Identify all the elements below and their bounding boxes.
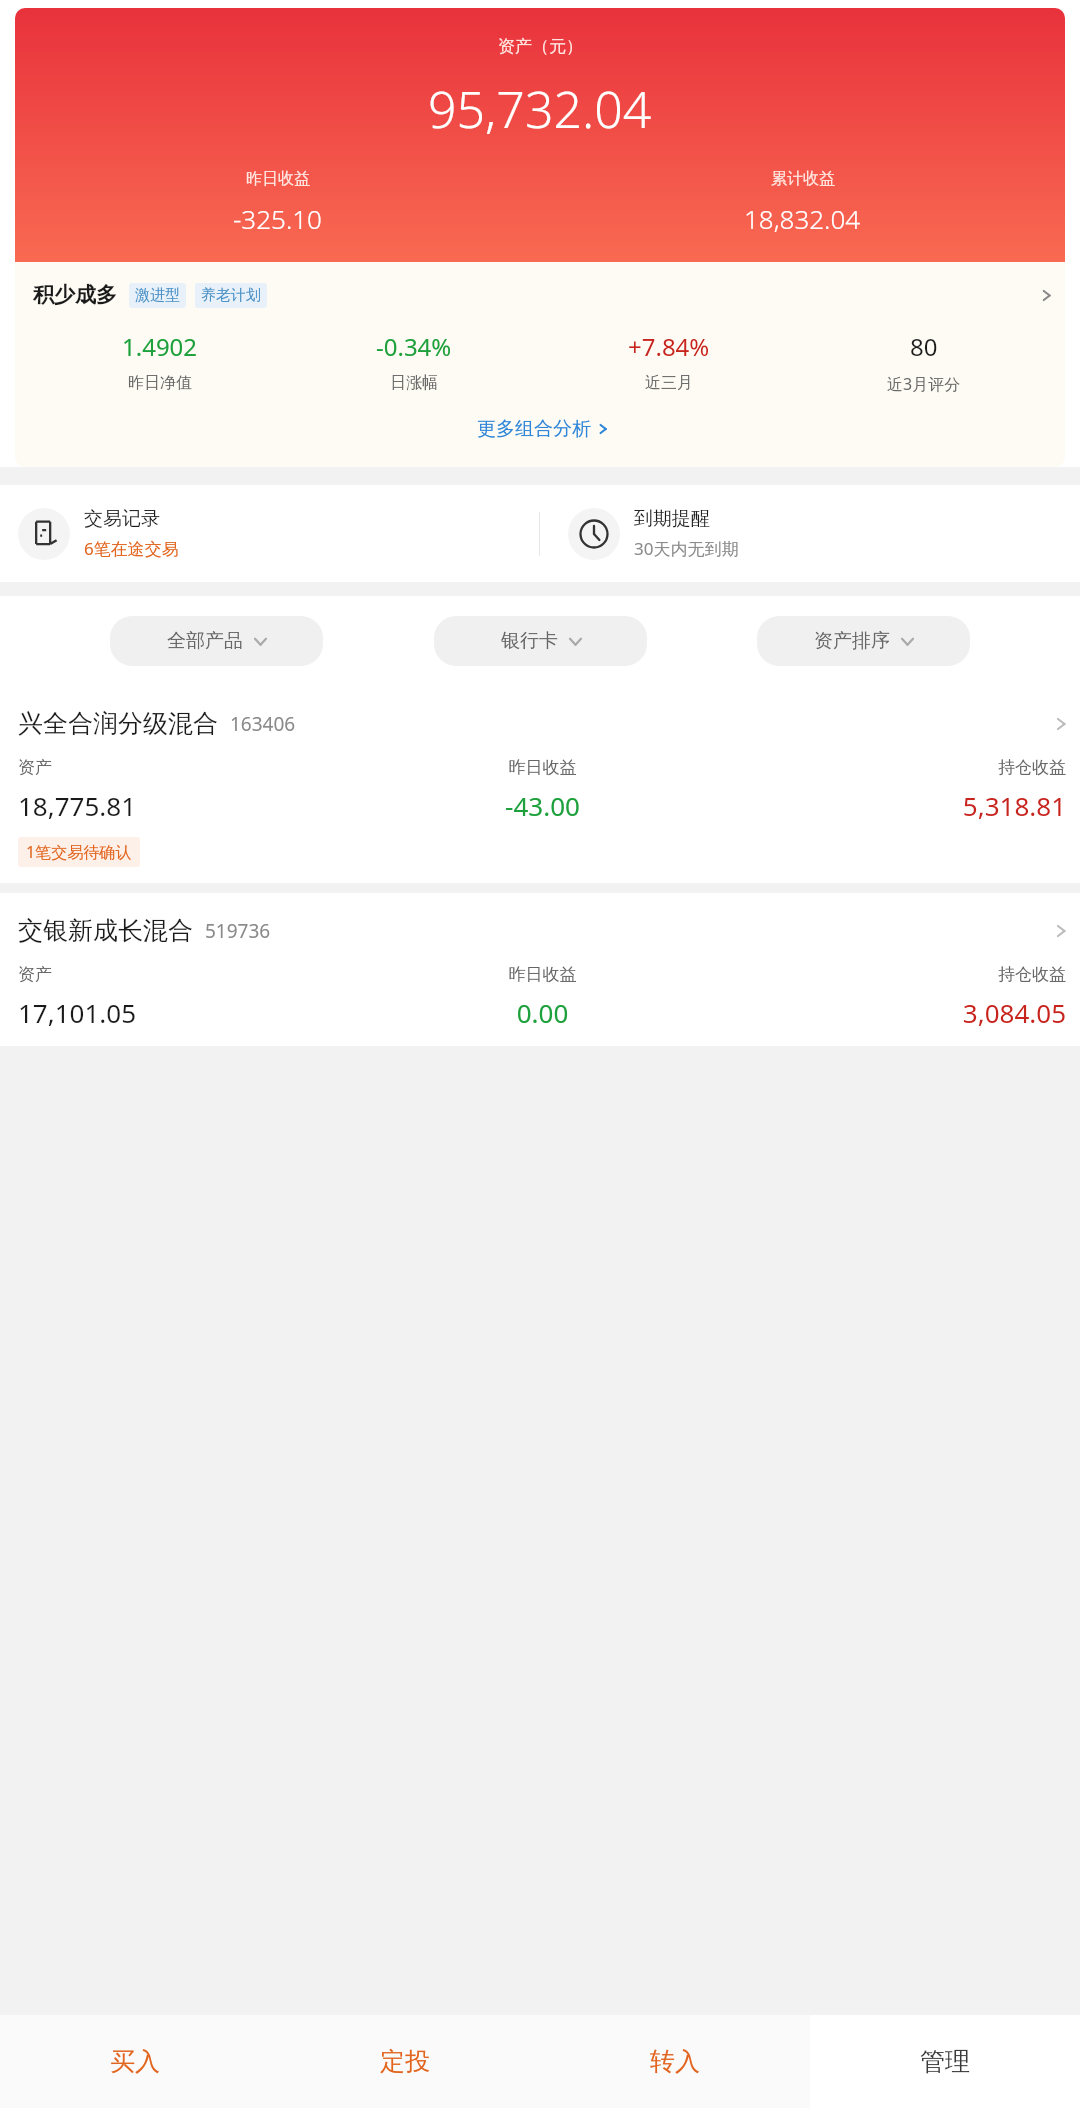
staticText: 163406 (230, 711, 296, 737)
staticText: 0.00 (368, 995, 717, 1030)
staticText: 昨日收益 (246, 169, 310, 189)
staticText: 资产 (18, 964, 368, 985)
staticText: 1.4902 (122, 330, 198, 363)
staticText: 资产 (18, 757, 368, 778)
staticText: 交银新成长混合 (18, 915, 193, 946)
staticText: 近三月 (645, 373, 693, 393)
staticText: 买入 (110, 2046, 160, 2077)
staticText: 18,832.04 (744, 201, 861, 236)
button[interactable]: 交银新成长混合 (0, 893, 1080, 1046)
staticText: 6笔在途交易 (84, 537, 179, 560)
staticText: 积少成多 (33, 282, 117, 308)
staticText: 银行卡 (501, 629, 558, 653)
button[interactable]: 资产排序 (757, 616, 970, 666)
staticText: 18,775.81 (18, 788, 368, 823)
staticText: 激进型 (135, 286, 180, 305)
staticText: 兴全合润分级混合 (18, 708, 218, 739)
button[interactable]: 转入 (540, 2015, 810, 2108)
button[interactable]: 更多组合分析 (33, 417, 1051, 441)
button[interactable]: 定投 (270, 2015, 540, 2108)
staticText: 定投 (380, 2046, 430, 2077)
staticText: 持仓收益 (717, 964, 1066, 985)
staticText: -43.00 (368, 788, 717, 823)
staticText: 资产（元） (498, 36, 583, 57)
staticText: 日涨幅 (390, 373, 438, 393)
button[interactable]: 资产（元） (15, 8, 1065, 262)
other: 到期提醒 (579, 519, 609, 549)
staticText: 519736 (205, 918, 271, 944)
staticText: 管理 (920, 2046, 970, 2077)
staticText: 交易记录 (84, 507, 160, 531)
staticText: 到期提醒 (634, 507, 710, 531)
staticText: 全部产品 (167, 629, 243, 653)
staticText: 5,318.81 (717, 788, 1066, 823)
button[interactable]: 兴全合润分级混合 (0, 686, 1080, 883)
staticText: 转入 (650, 2046, 700, 2077)
staticText: 80 (910, 330, 938, 363)
button[interactable]: 银行卡 (434, 616, 647, 666)
staticText: -325.10 (233, 201, 322, 236)
button[interactable]: 全部产品 (110, 616, 323, 666)
staticText: 95,732.04 (428, 75, 652, 143)
staticText: 累计收益 (771, 169, 835, 189)
staticText: 养老计划 (201, 286, 261, 305)
button[interactable]: 交易记录 (0, 485, 539, 582)
staticText: 1笔交易待确认 (26, 841, 132, 863)
staticText: 昨日净值 (128, 373, 192, 393)
staticText: 30天内无到期 (634, 537, 739, 560)
staticText: -0.34% (376, 330, 452, 363)
button[interactable]: 买入 (0, 2015, 270, 2108)
staticText: 资产排序 (814, 629, 890, 653)
staticText: 昨日收益 (368, 964, 717, 985)
staticText: 3,084.05 (717, 995, 1066, 1030)
staticText: 17,101.05 (18, 995, 368, 1030)
staticText: 昨日收益 (368, 757, 717, 778)
button[interactable]: 到期提醒 (540, 485, 1080, 582)
button[interactable]: 管理 (810, 2015, 1080, 2108)
staticText: 近3月评分 (887, 373, 961, 395)
other: 交易记录 (30, 520, 58, 548)
staticText: 更多组合分析 (477, 417, 591, 441)
button[interactable]: 积少成多 (15, 262, 1065, 467)
staticText: 持仓收益 (717, 757, 1066, 778)
staticText: +7.84% (628, 330, 710, 363)
